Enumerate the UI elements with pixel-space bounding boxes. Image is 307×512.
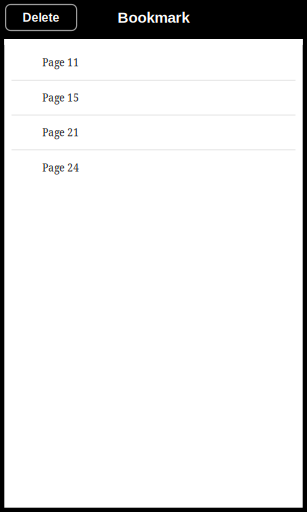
staticText: Page 11: [42, 55, 79, 69]
button[interactable]: Page 15: [4, 81, 303, 116]
staticText: Page 24: [42, 161, 79, 174]
button[interactable]: Page 24: [4, 150, 303, 185]
staticText: Bookmark: [117, 9, 189, 26]
button[interactable]: Delete: [6, 4, 77, 30]
staticText: Page 21: [42, 126, 79, 139]
button[interactable]: Page 21: [4, 115, 303, 150]
staticText: Delete: [23, 11, 60, 24]
staticText: Page 15: [42, 91, 79, 104]
button[interactable]: Page 11: [4, 45, 303, 81]
